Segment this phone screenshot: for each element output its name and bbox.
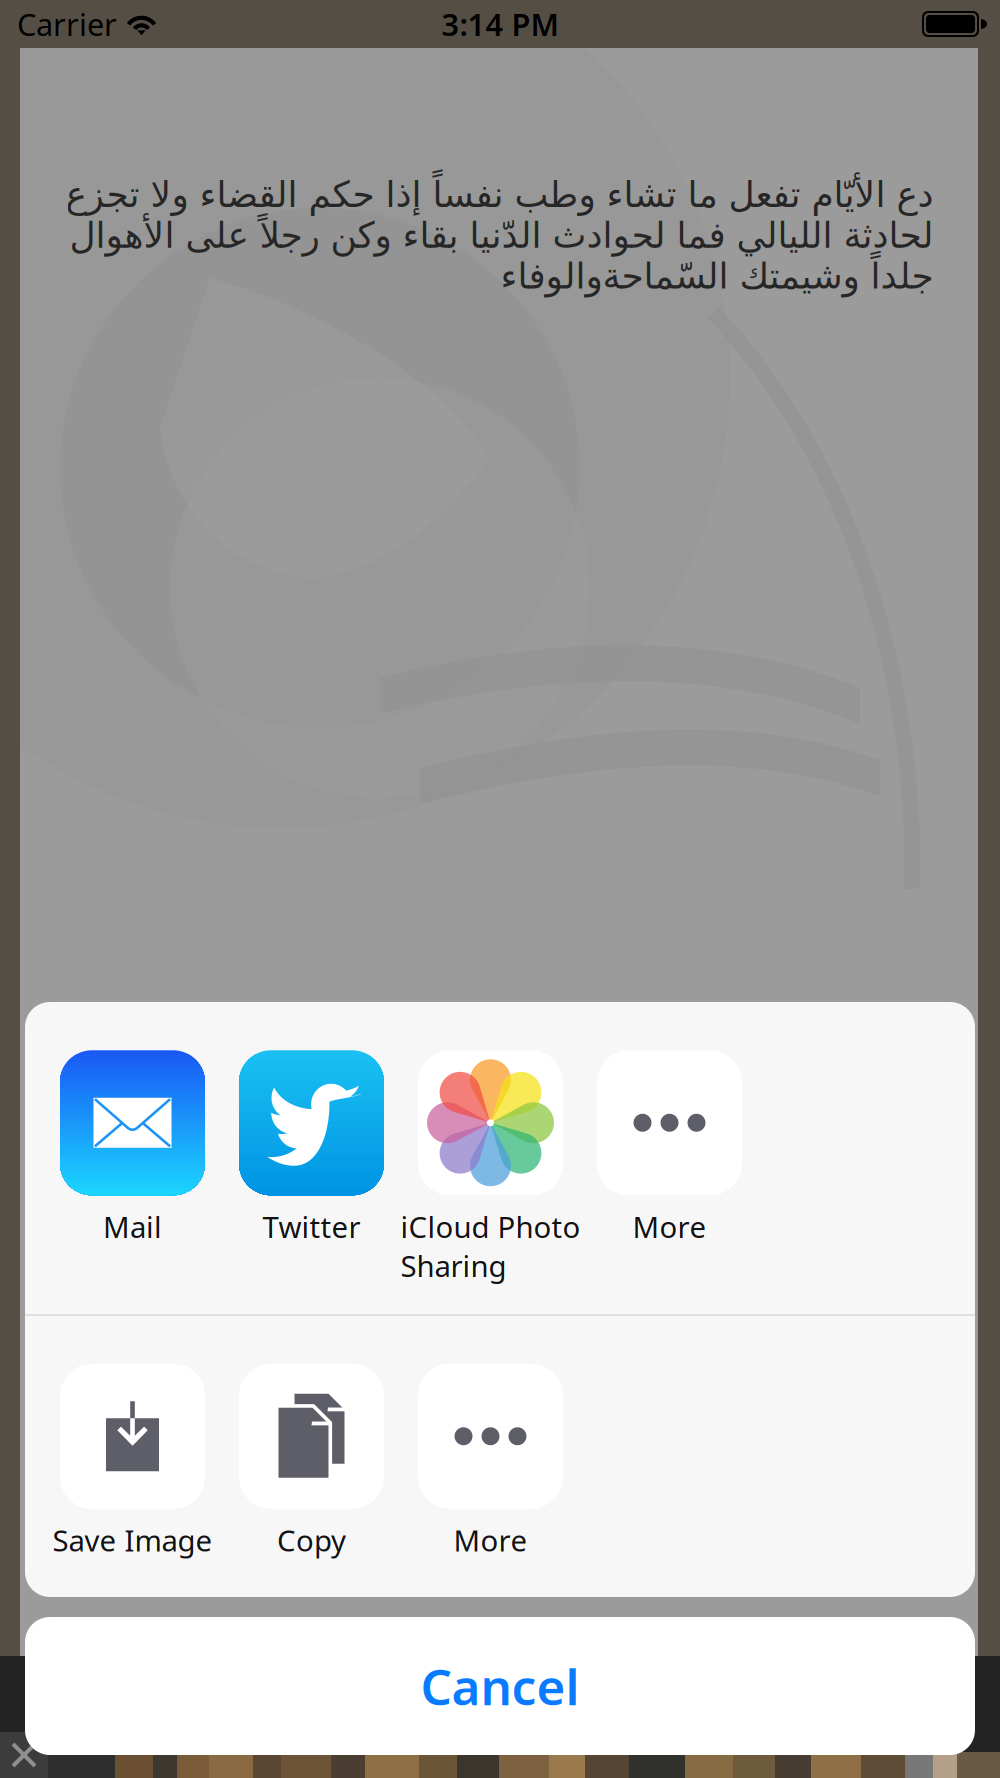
button[interactable]: Close — [0, 1732, 48, 1778]
button[interactable]: Mail — [43, 1002, 222, 1314]
staticText: More — [632, 1207, 706, 1246]
staticText: iCloud Photo Sharing — [400, 1207, 580, 1285]
button[interactable]: More — [401, 1316, 580, 1597]
staticText: Twitter — [262, 1207, 360, 1246]
staticText: Cancel — [420, 1653, 579, 1719]
staticText: Copy — [277, 1521, 346, 1560]
button[interactable]: Twitter — [222, 1002, 401, 1314]
button[interactable]: iCloud Photo Sharing — [401, 1002, 580, 1314]
button[interactable]: More — [580, 1002, 759, 1314]
staticText: Mail — [103, 1207, 162, 1246]
staticText: 3:14 PM — [441, 4, 558, 44]
staticText: دع الأيّام تفعل ما تشاء وطب نفساً إذا حك… — [65, 174, 933, 297]
staticText: Carrier — [17, 4, 117, 44]
staticText: Save Image — [52, 1521, 212, 1560]
button[interactable]: Copy — [222, 1316, 401, 1597]
button[interactable]: Save Image — [43, 1316, 222, 1597]
button[interactable]: Cancel — [25, 1617, 975, 1755]
staticText: More — [453, 1521, 527, 1560]
